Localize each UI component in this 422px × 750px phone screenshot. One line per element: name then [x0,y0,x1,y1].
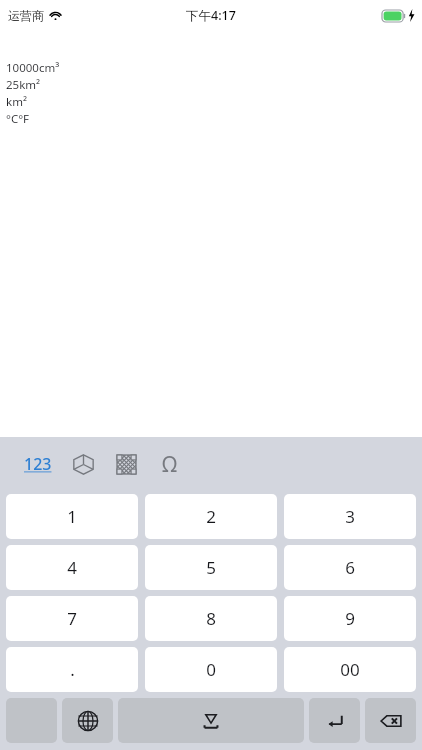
button[interactable]: . [6,647,138,692]
staticText: 1 [67,505,77,528]
button[interactable]: 2 [145,494,277,539]
staticText: 2 [206,505,216,528]
staticText: km² [6,94,27,110]
button[interactable]: Backspace [365,698,416,743]
staticText: 25km² [6,77,41,93]
button[interactable]: 8 [145,596,277,641]
button[interactable]: 00 [284,647,416,692]
button[interactable]: 5 [145,545,277,590]
staticText: 123 [24,453,52,475]
button[interactable]: Switch keyboard [62,698,113,743]
staticText: . [70,658,75,681]
staticText: 运营商 [8,8,44,23]
staticText: 9 [345,607,355,630]
staticText: 00 [340,658,360,681]
button[interactable]: Return [309,698,360,743]
staticText: 0 [206,658,216,681]
staticText: 6 [345,556,355,579]
button[interactable]: Hide keyboard [118,698,304,743]
button[interactable]: 7 [6,596,138,641]
button[interactable]: 4 [6,545,138,590]
staticText: Ω [162,450,178,479]
button[interactable]: 3 [284,494,416,539]
staticText: 3 [345,505,355,528]
staticText: °C°F [6,111,30,127]
button[interactable]: 6 [284,545,416,590]
staticText: 8 [206,607,216,630]
staticText: 10000cm³ [6,60,60,76]
staticText: 4 [67,556,77,579]
button[interactable]: 0 [145,647,277,692]
staticText: 下午4:17 [186,7,236,24]
button[interactable]: Area units [106,444,146,484]
staticText: 7 [67,607,77,630]
staticText: 5 [206,556,216,579]
button[interactable]: 1 [6,494,138,539]
button[interactable]: 9 [284,596,416,641]
button[interactable]: Volume units [63,444,103,484]
button[interactable]: 123 [18,444,58,484]
button[interactable]: Other units [150,444,190,484]
